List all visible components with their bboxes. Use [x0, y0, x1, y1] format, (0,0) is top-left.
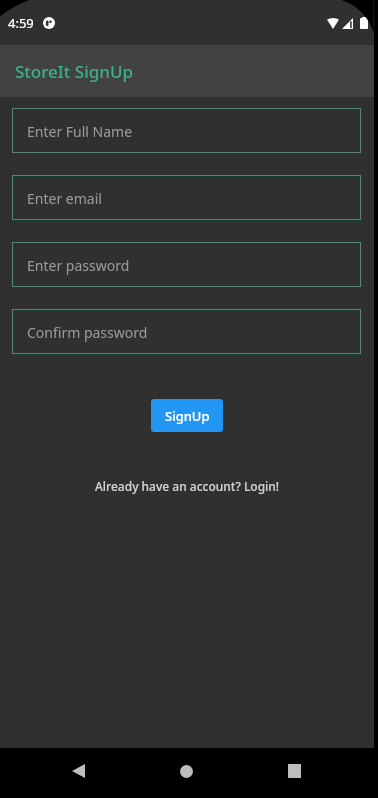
button[interactable]: Already have an account? Login!	[95, 478, 280, 494]
button[interactable]: Recents	[270, 747, 318, 795]
staticText: Enter password	[27, 256, 130, 275]
button[interactable]: Confirm password	[12, 309, 362, 355]
button[interactable]: Enter Full Name	[12, 108, 362, 154]
button[interactable]: Enter email	[12, 175, 362, 221]
staticText: SignUp	[165, 407, 210, 425]
staticText: Enter Full Name	[27, 122, 133, 141]
button[interactable]: Home	[162, 747, 210, 795]
button[interactable]: Back	[54, 747, 102, 795]
staticText: StoreIt SignUp	[15, 60, 134, 83]
button[interactable]: Enter password	[12, 242, 362, 288]
staticText: Confirm password	[27, 323, 148, 342]
button[interactable]: SignUp	[151, 399, 223, 432]
staticText: 4:59	[8, 14, 34, 32]
staticText: Enter email	[27, 189, 102, 208]
